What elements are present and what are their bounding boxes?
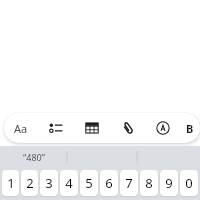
staticText: 7 — [125, 174, 133, 192]
button[interactable]: Attach file — [110, 113, 146, 143]
staticText: 5 — [85, 174, 93, 192]
staticText: 3 — [45, 174, 53, 192]
button[interactable]: 0 — [180, 170, 198, 196]
staticText: 1 — [7, 174, 15, 192]
button[interactable]: Aa — [4, 113, 38, 143]
button[interactable]: 6 — [100, 170, 118, 196]
button[interactable]: 2 — [21, 170, 38, 196]
button[interactable]: 1 — [2, 170, 19, 196]
button[interactable]: 9 — [160, 170, 178, 196]
staticText: B — [186, 121, 194, 136]
staticText: 4 — [65, 174, 73, 192]
button[interactable]: Table — [74, 113, 110, 143]
staticText: Aa — [14, 121, 28, 136]
staticText: 0 — [185, 174, 193, 192]
staticText: 2 — [26, 174, 34, 192]
button[interactable]: 7 — [120, 170, 138, 196]
staticText: 8 — [145, 174, 153, 192]
button[interactable]: 5 — [80, 170, 98, 196]
button[interactable]: 3 — [40, 170, 58, 196]
button[interactable]: 8 — [140, 170, 158, 196]
button[interactable]: “480” — [0, 146, 67, 168]
staticText: 9 — [165, 174, 173, 192]
staticText: “480” — [23, 151, 45, 163]
button[interactable]: 4 — [60, 170, 78, 196]
button[interactable]: Bulleted list — [38, 113, 74, 143]
button[interactable]: Markup — [146, 113, 180, 143]
button[interactable]: B — [180, 113, 200, 143]
staticText: 6 — [105, 174, 113, 192]
